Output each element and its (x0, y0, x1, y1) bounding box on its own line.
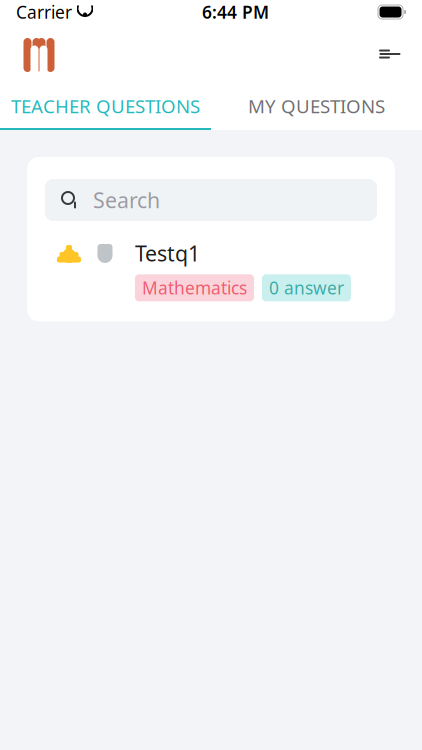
button[interactable]: MY QUESTIONS (211, 84, 422, 128)
button[interactable]: Back (368, 32, 412, 76)
staticText: MY QUESTIONS (248, 94, 385, 118)
staticText: Mathematics (142, 276, 247, 299)
staticText: Carrier (16, 0, 72, 23)
button[interactable]: TEACHER QUESTIONS (0, 84, 211, 128)
staticText: Search (93, 186, 160, 214)
button[interactable]: Testq1 (27, 239, 395, 301)
staticText: 0 answer (269, 276, 344, 299)
button[interactable]: Search (45, 179, 377, 221)
staticText: Testq1 (135, 239, 200, 267)
staticText: TEACHER QUESTIONS (11, 94, 200, 118)
staticText: 6:44 PM (202, 0, 269, 23)
